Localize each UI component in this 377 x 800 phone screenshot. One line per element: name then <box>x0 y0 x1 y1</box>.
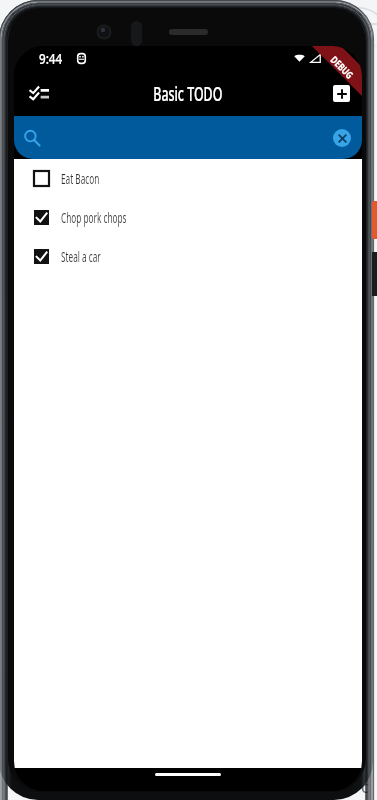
button[interactable]: Eat Bacon <box>14 159 362 198</box>
staticText: Chop pork chops <box>61 209 127 227</box>
staticText: Basic TODO <box>153 80 223 107</box>
staticText: Steal a car <box>61 248 101 266</box>
staticText: Eat Bacon <box>61 170 99 188</box>
staticText: ard c <box>330 775 370 798</box>
button[interactable]: Chop pork chops <box>14 198 362 237</box>
button[interactable]: Search <box>17 123 47 153</box>
button[interactable]: Steal a car <box>14 237 362 276</box>
button[interactable]: Toggle all items <box>22 76 56 110</box>
button[interactable]: Add item <box>326 78 356 108</box>
button[interactable]: Clear search <box>327 123 357 153</box>
staticText: 9:44 <box>39 48 62 68</box>
staticText: DEBUG <box>328 53 357 82</box>
